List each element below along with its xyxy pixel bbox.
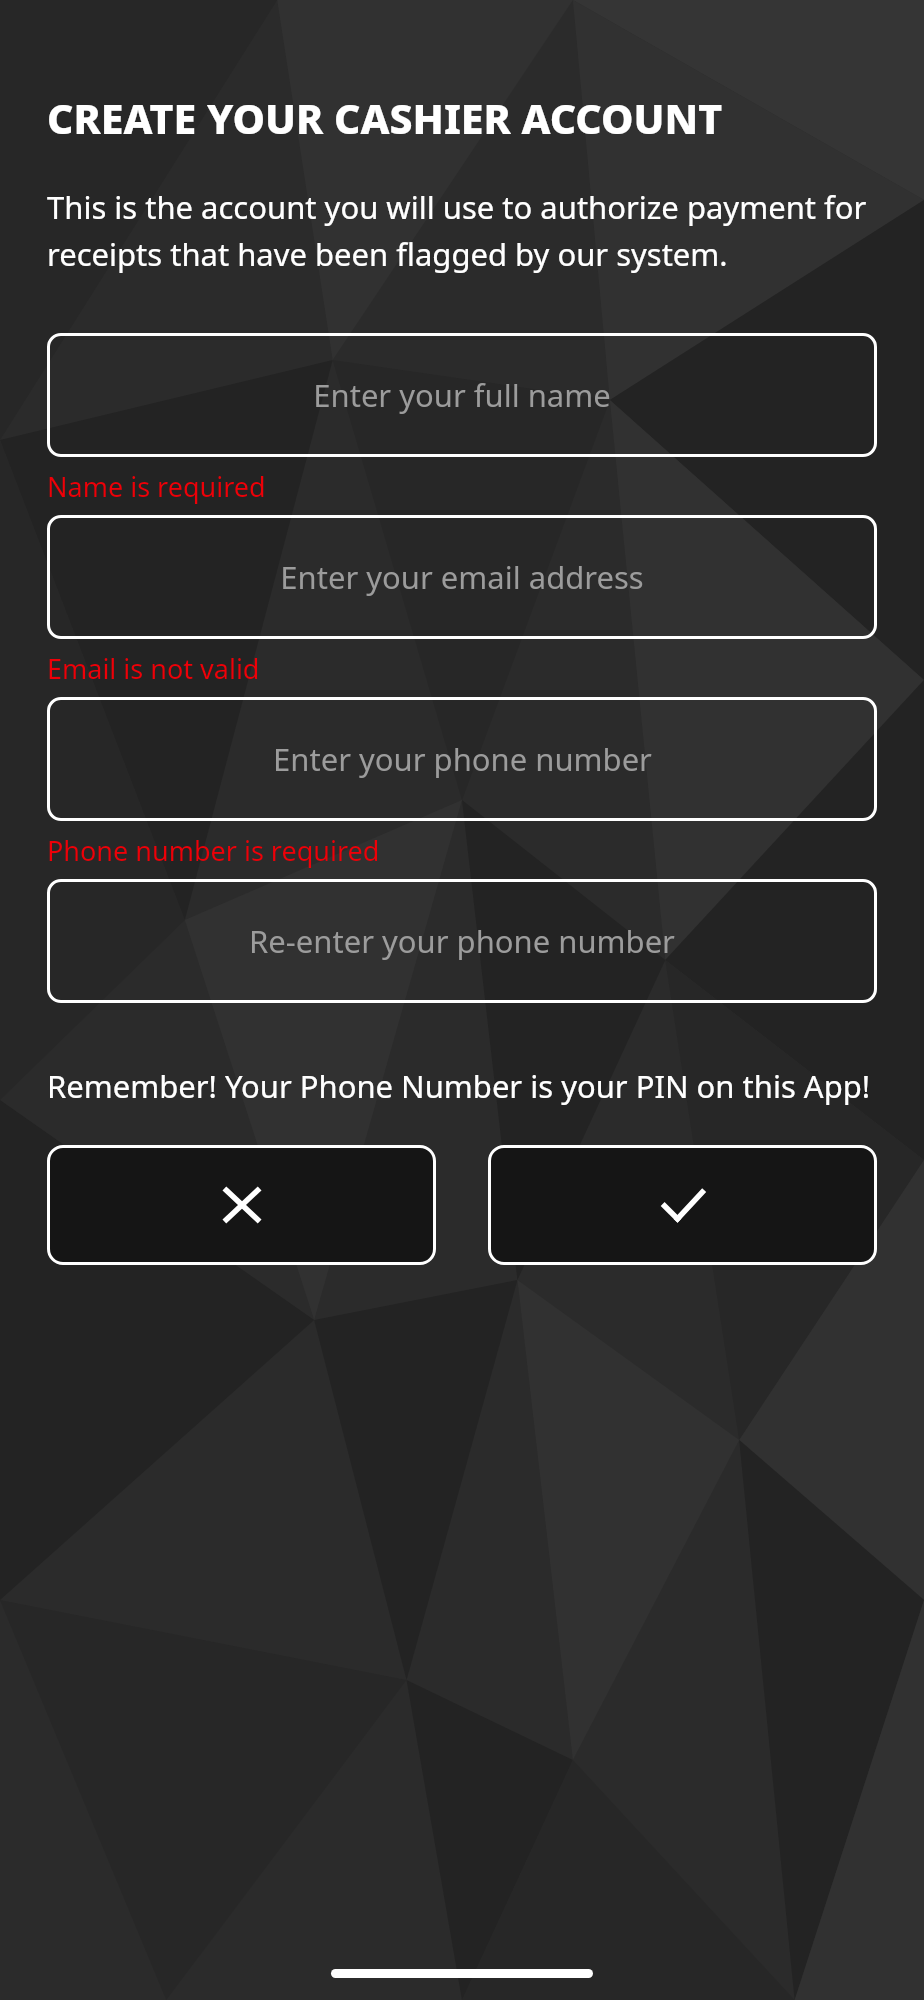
staticText: Email is not valid: [47, 650, 877, 687]
staticText: Phone number is required: [47, 832, 877, 869]
button[interactable]: Cancel: [47, 1145, 436, 1265]
button[interactable]: Enter your email address: [47, 515, 877, 639]
staticText: This is the account you will use to auth…: [47, 186, 877, 275]
staticText: Enter your email address: [280, 556, 644, 598]
button[interactable]: Enter your phone number: [47, 697, 877, 821]
staticText: Re-enter your phone number: [249, 920, 675, 962]
staticText: Enter your phone number: [273, 738, 652, 780]
button[interactable]: Re-enter your phone number: [47, 879, 877, 1003]
staticText: Enter your full name: [313, 374, 611, 416]
staticText: Name is required: [47, 468, 877, 505]
button[interactable]: Enter your full name: [47, 333, 877, 457]
staticText: Remember! Your Phone Number is your PIN …: [47, 1065, 871, 1107]
staticText: CREATE YOUR CASHIER ACCOUNT: [47, 90, 723, 146]
button[interactable]: Confirm: [488, 1145, 877, 1265]
